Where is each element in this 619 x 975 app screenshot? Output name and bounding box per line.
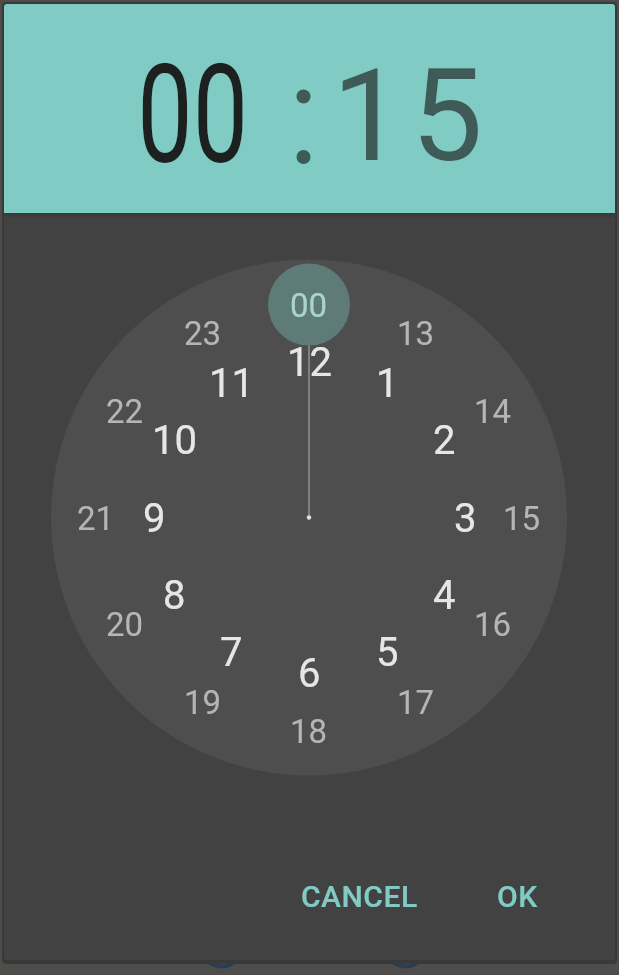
staticText: 3 <box>454 495 477 542</box>
staticText: 20 <box>106 605 144 644</box>
staticText: 16 <box>474 605 512 644</box>
staticText: 5 <box>376 629 399 676</box>
staticText: 9 <box>143 495 166 542</box>
staticText: 00 <box>137 34 249 196</box>
staticText: OK <box>497 879 538 914</box>
staticText: 7 <box>220 629 243 676</box>
button[interactable]: 6 <box>264 643 354 703</box>
button[interactable]: 22 <box>80 381 170 441</box>
staticText: 8 <box>163 572 186 619</box>
staticText: 14 <box>474 392 512 431</box>
button[interactable]: 23 <box>158 303 248 363</box>
staticText: 11 <box>209 360 254 407</box>
staticText: 10 <box>152 417 197 464</box>
button[interactable]: 9 <box>109 488 199 548</box>
button[interactable]: 20 <box>80 594 170 654</box>
staticText: 19 <box>184 683 222 722</box>
button[interactable]: 17 <box>371 672 461 732</box>
staticText: 1 <box>376 360 399 407</box>
button[interactable]: 11 <box>186 353 276 413</box>
button[interactable]: 14 <box>448 381 538 441</box>
button[interactable]: 18 <box>264 701 354 761</box>
button[interactable]: 5 <box>342 622 432 682</box>
staticText: 13 <box>397 314 435 353</box>
staticText: 15 <box>503 499 541 538</box>
staticText: 22 <box>106 392 144 431</box>
button[interactable]: 4 <box>399 565 489 625</box>
button[interactable]: 7 <box>186 622 276 682</box>
button[interactable]: 21 <box>51 488 141 548</box>
button[interactable]: 19 <box>158 672 248 732</box>
staticText: CANCEL <box>301 879 418 914</box>
button[interactable]: CANCEL <box>269 851 449 941</box>
staticText: 00 <box>290 286 328 325</box>
button[interactable]: 10 <box>129 410 219 470</box>
staticText: 1 <box>332 41 404 191</box>
button[interactable]: 3 <box>420 488 510 548</box>
button[interactable]: 1 <box>342 353 432 413</box>
staticText: 21 <box>77 499 115 538</box>
button[interactable]: 5 <box>377 36 517 196</box>
button[interactable]: 8 <box>129 565 219 625</box>
button[interactable]: 12 <box>264 332 354 392</box>
button[interactable]: 00 <box>114 15 272 215</box>
staticText: 17 <box>397 683 435 722</box>
button[interactable]: 13 <box>371 303 461 363</box>
staticText: 5 <box>411 41 483 191</box>
staticText: 6 <box>298 650 321 697</box>
staticText: 18 <box>290 712 328 751</box>
button[interactable]: 15 <box>477 488 567 548</box>
button[interactable]: 1 <box>298 36 438 196</box>
button[interactable]: 00 <box>264 275 354 335</box>
staticText: 4 <box>433 572 456 619</box>
button[interactable]: OK <box>462 851 572 941</box>
staticText: 23 <box>184 314 222 353</box>
button[interactable]: 2 <box>399 410 489 470</box>
button[interactable]: 16 <box>448 594 538 654</box>
staticText: 2 <box>433 417 456 464</box>
staticText: 12 <box>287 339 332 386</box>
